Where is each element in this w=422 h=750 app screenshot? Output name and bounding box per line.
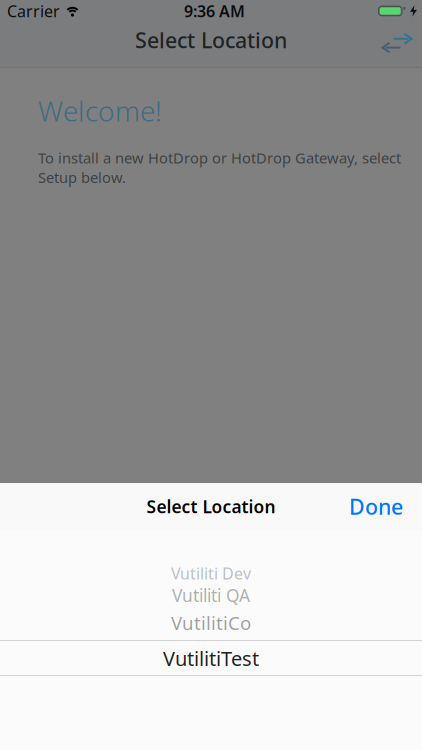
staticText: Select Location xyxy=(135,26,287,54)
button[interactable]: Vutiliti Dev xyxy=(0,563,422,584)
button[interactable]: Switch location xyxy=(382,33,422,56)
staticText: VutilitiTest xyxy=(163,645,259,671)
staticText: Vutiliti QA xyxy=(172,584,250,607)
staticText: VutilitiCo xyxy=(171,610,251,635)
button[interactable]: Vutiliti QA xyxy=(0,584,422,607)
staticText: 9:36 AM xyxy=(184,0,245,22)
staticText: Vutiliti Dev xyxy=(171,563,251,584)
staticText: Done xyxy=(349,492,403,521)
staticText: Welcome! xyxy=(38,92,162,129)
staticText: Carrier xyxy=(7,0,60,22)
staticText: Setup below. xyxy=(38,168,126,187)
button[interactable]: VutilitiCo xyxy=(0,610,422,635)
button[interactable]: VutilitiTest xyxy=(0,645,422,671)
staticText: Select Location xyxy=(146,495,275,518)
button[interactable]: Done xyxy=(349,492,422,521)
staticText: To install a new HotDrop or HotDrop Gate… xyxy=(38,148,401,168)
